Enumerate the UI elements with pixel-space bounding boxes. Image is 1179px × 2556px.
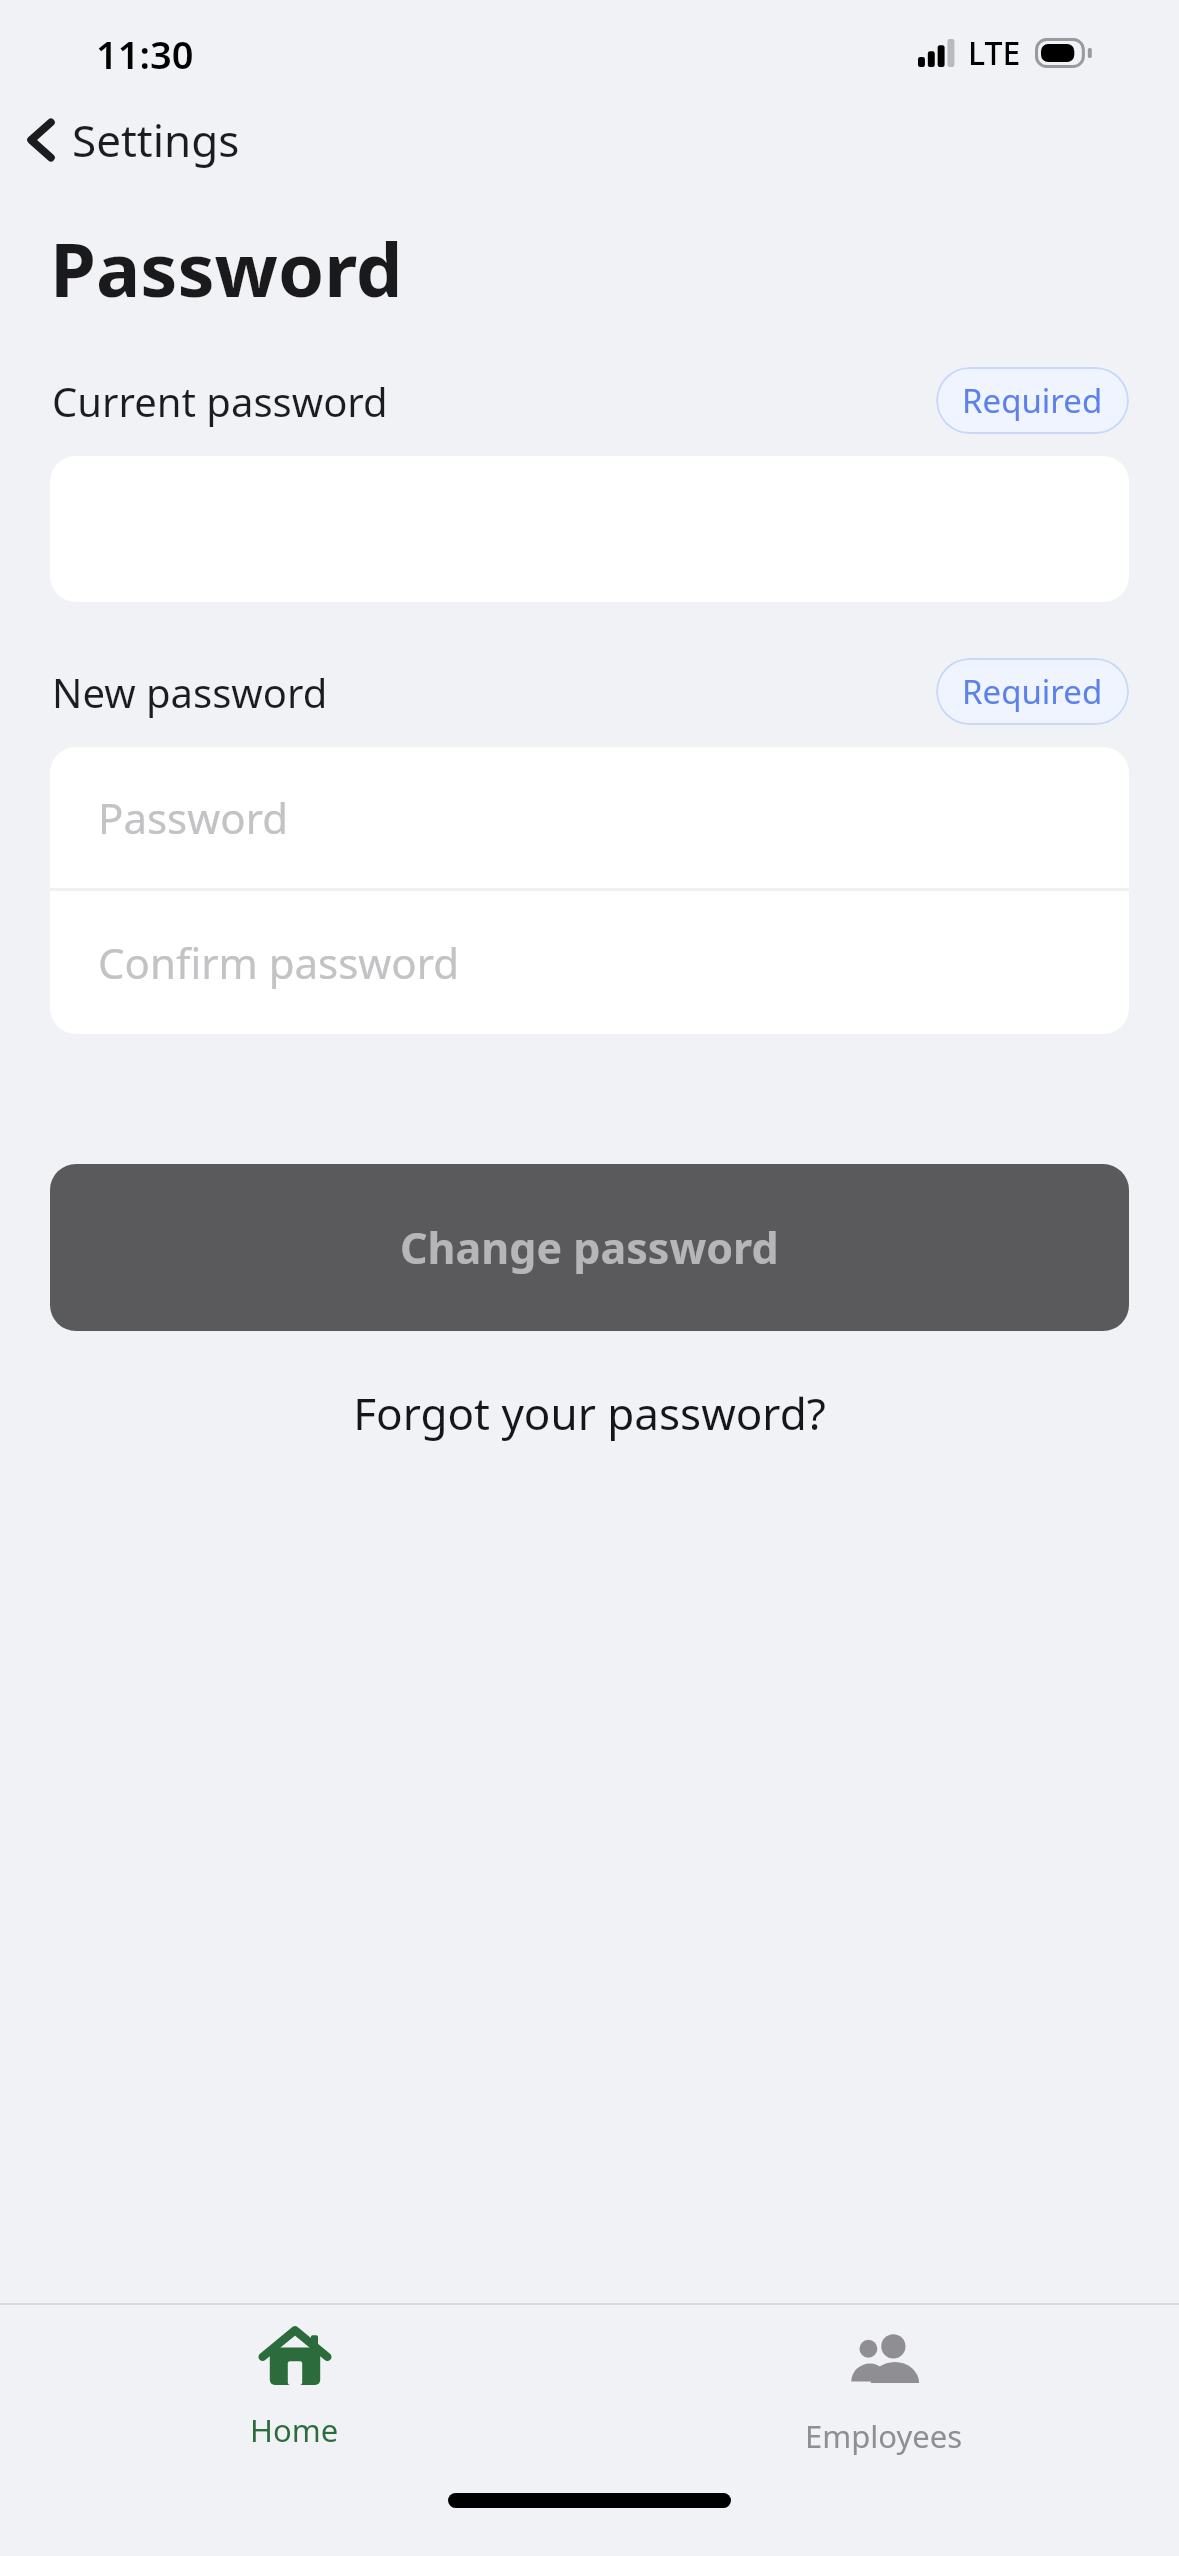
staticText: Password [98,789,288,846]
staticText: Settings [72,110,240,170]
staticText: Required [962,669,1103,714]
button[interactable]: Required [936,658,1129,725]
staticText: Home [250,2409,339,2451]
button[interactable]: Forgot your password? [333,1375,846,1451]
staticText: Employees [805,2415,963,2457]
staticText: Required [962,378,1103,423]
other: Back [28,118,54,162]
button[interactable]: Password [50,747,1129,888]
staticText: Password [50,218,403,319]
staticText: Change password [400,1218,779,1277]
staticText: 11:30 [96,28,194,80]
staticText: LTE [968,31,1021,75]
other: Employees [845,2323,923,2401]
button[interactable]: Employees [589,2305,1179,2465]
button[interactable]: Back [14,100,254,180]
button[interactable]: Change password [50,1164,1129,1331]
staticText: Confirm password [98,934,460,991]
staticText: Current password [52,374,388,428]
staticText: Forgot your password? [353,1383,826,1443]
staticText: New password [52,665,328,719]
button[interactable]: Home [0,2305,589,2465]
other: Home [259,2323,331,2395]
button[interactable]: Required [936,367,1129,434]
button[interactable]: Confirm password [50,891,1129,1034]
